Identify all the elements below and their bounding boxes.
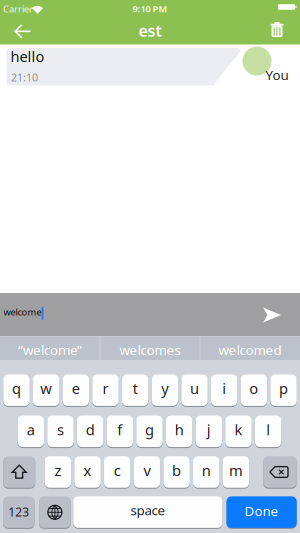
staticText: y xyxy=(161,379,168,398)
staticText: r xyxy=(102,379,108,398)
staticText: You xyxy=(265,66,288,84)
staticText: b xyxy=(172,460,181,480)
staticText: d xyxy=(86,420,95,439)
staticText: est xyxy=(138,20,161,41)
staticText: c xyxy=(114,460,121,480)
staticText: z xyxy=(54,460,61,480)
staticText: p xyxy=(279,379,288,398)
staticText: Done xyxy=(245,502,279,520)
staticText: j xyxy=(207,420,211,439)
staticText: f xyxy=(117,420,122,439)
staticText: t xyxy=(133,379,138,398)
staticText: space xyxy=(130,501,165,519)
staticText: welcomed xyxy=(218,341,281,359)
staticText: e xyxy=(72,379,80,398)
staticText: h xyxy=(175,420,184,439)
staticText: q xyxy=(12,379,21,398)
staticText: m xyxy=(229,460,243,480)
staticText: welcome xyxy=(3,306,41,318)
staticText: hello xyxy=(10,47,44,66)
staticText: o xyxy=(249,379,258,398)
staticText: l xyxy=(266,420,270,439)
staticText: a xyxy=(27,420,35,439)
staticText: u xyxy=(190,379,199,398)
staticText: n xyxy=(202,460,211,480)
staticText: w xyxy=(40,379,52,398)
staticText: v xyxy=(143,460,150,480)
staticText: s xyxy=(57,420,64,439)
staticText: 9:10 PM xyxy=(132,2,167,15)
staticText: 123 xyxy=(8,504,29,520)
staticText: k xyxy=(234,420,242,439)
staticText: “welcome” xyxy=(18,341,82,359)
staticText: welcomes xyxy=(119,341,180,359)
staticText: x xyxy=(84,460,92,480)
staticText: Carrier xyxy=(3,3,33,15)
staticText: 21:10 xyxy=(11,70,38,84)
staticText: g xyxy=(145,420,154,439)
staticText: i xyxy=(222,379,226,398)
